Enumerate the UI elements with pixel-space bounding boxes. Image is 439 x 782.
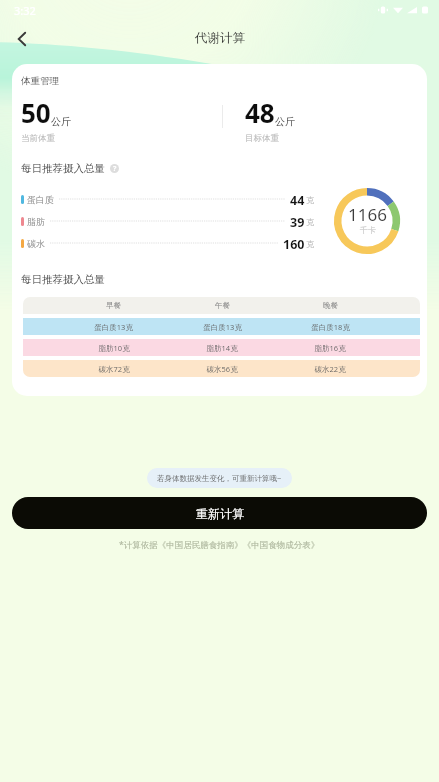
staticText: 早餐 [106,301,121,310]
staticText: 代谢计算 [195,30,245,46]
staticText: 目标体重 [245,133,279,144]
button[interactable]: 若身体数据发生变化，可重新计算哦~ [147,468,292,488]
staticText: 50 [21,95,51,130]
staticText: 48 [245,95,275,130]
staticText: 44 [290,192,305,206]
staticText: 脂肪16克 [314,343,346,353]
staticText: 公斤 [51,115,71,128]
staticText: 克 [306,239,314,249]
staticText: 体重管理 [21,75,59,87]
staticText: ? [113,164,117,173]
staticText: 蛋白质18克 [311,322,350,332]
staticText: 克 [306,195,314,205]
staticText: *计算依据《中国居民膳食指南》《中国食物成分表》 [119,539,320,551]
staticText: 午餐 [215,301,230,310]
staticText: 碳水 [27,238,45,249]
staticText: 160 [283,236,305,250]
staticText: 克 [306,217,314,227]
button[interactable]: Back [7,24,37,54]
staticText: 若身体数据发生变化，可重新计算哦~ [157,473,282,483]
staticText: 重新计算 [196,506,244,521]
staticText: 碳水22克 [314,364,346,374]
staticText: 晚餐 [323,301,338,310]
staticText: 千卡 [360,225,376,235]
staticText: 蛋白质13克 [94,322,133,332]
staticText: 脂肪 [27,216,45,227]
staticText: 脂肪14克 [206,343,238,353]
staticText: 当前体重 [21,133,55,144]
staticText: 蛋白质 [27,194,54,205]
staticText: 蛋白质13克 [203,322,242,332]
button[interactable]: Help [110,164,119,173]
staticText: 1166 [348,203,387,226]
staticText: 脂肪10克 [98,343,130,353]
staticText: 每日推荐摄入总量 [21,273,105,286]
staticText: 公斤 [275,115,295,128]
staticText: 39 [290,214,305,228]
button[interactable]: 重新计算 [12,497,427,529]
staticText: 3:32 [14,3,36,18]
staticText: 碳水56克 [206,364,238,374]
staticText: 碳水72克 [98,364,130,374]
staticText: 每日推荐摄入总量 [21,162,105,175]
